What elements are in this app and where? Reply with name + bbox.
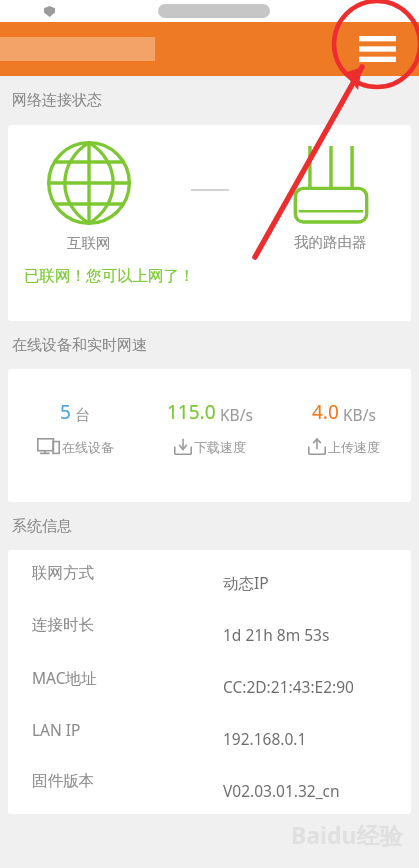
staticText: 网络连接状态: [12, 91, 419, 110]
button[interactable]: 115.0: [143, 399, 277, 455]
staticText: 已联网！您可以上网了！: [24, 266, 195, 286]
staticText: 115.0: [167, 399, 216, 425]
staticText: 在线设备和实时网速: [12, 336, 419, 355]
button[interactable]: 4.0: [277, 399, 411, 455]
staticText: 动态IP: [223, 572, 269, 593]
staticText: 1d 21h 8m 53s: [223, 624, 330, 645]
staticText: 5: [60, 399, 71, 425]
staticText: 固件版本: [32, 771, 94, 791]
staticText: 4.0: [312, 399, 339, 425]
staticText: KB/s: [343, 404, 376, 425]
staticText: 在线设备: [62, 439, 114, 455]
staticText: 台: [75, 405, 91, 425]
button[interactable]: MAC地址: [8, 654, 411, 706]
staticText: MAC地址: [32, 667, 97, 688]
staticText: Baidu经验: [291, 819, 403, 850]
button[interactable]: 固件版本: [8, 758, 411, 810]
button[interactable]: 连接时长: [8, 602, 411, 654]
staticText: CC:2D:21:43:E2:90: [223, 676, 354, 697]
staticText: 系统信息: [12, 517, 419, 536]
button[interactable]: 联网方式: [8, 550, 411, 602]
staticText: 下载速度: [194, 439, 246, 455]
staticText: 上传速度: [328, 439, 380, 455]
staticText: 连接时长: [32, 615, 94, 635]
staticText: LAN IP: [32, 719, 81, 740]
staticText: 互联网: [67, 234, 111, 252]
staticText: 联网方式: [32, 563, 94, 583]
button[interactable]: 5: [8, 399, 143, 455]
staticText: KB/s: [220, 404, 253, 425]
staticText: 192.168.0.1: [223, 728, 307, 749]
button[interactable]: Menu: [355, 27, 399, 71]
staticText: V02.03.01.32_cn: [223, 780, 340, 801]
staticText: 我的路由器: [294, 233, 367, 251]
button[interactable]: LAN IP: [8, 706, 411, 758]
